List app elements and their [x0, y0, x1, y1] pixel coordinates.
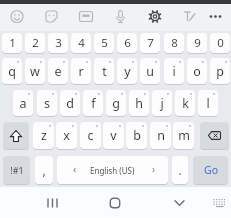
- staticText: h: [135, 95, 143, 112]
- button[interactable]: n: [150, 122, 171, 149]
- button[interactable]: [73, 4, 99, 31]
- button[interactable]: u: [140, 58, 160, 84]
- staticText: z: [41, 127, 47, 144]
- staticText: j: [160, 95, 164, 112]
- button[interactable]: 4: [71, 33, 91, 53]
- button[interactable]: [39, 4, 65, 31]
- staticText: u: [146, 63, 154, 80]
- staticText: !#1: [10, 164, 24, 176]
- staticText: v: [110, 127, 117, 144]
- button[interactable]: c: [80, 122, 101, 149]
- button[interactable]: t: [94, 58, 114, 84]
- button[interactable]: [108, 4, 134, 31]
- button[interactable]: 8: [164, 33, 184, 53]
- staticText: 1: [9, 35, 16, 51]
- staticText: ,: [42, 162, 46, 178]
- staticText: i: [172, 63, 176, 80]
- staticText: e: [54, 63, 62, 80]
- button[interactable]: m: [173, 122, 194, 149]
- staticText: q: [8, 63, 16, 80]
- staticText: x: [63, 127, 70, 144]
- button[interactable]: i: [164, 58, 184, 84]
- button[interactable]: [3, 122, 29, 149]
- staticText: 0: [217, 35, 224, 51]
- button[interactable]: k: [175, 90, 195, 116]
- staticText: r: [78, 63, 84, 80]
- button[interactable]: b: [126, 122, 147, 149]
- button[interactable]: g: [106, 90, 126, 116]
- button[interactable]: p: [210, 58, 230, 84]
- staticText: 3: [55, 35, 62, 51]
- button[interactable]: w: [25, 58, 45, 84]
- staticText: .: [178, 162, 182, 178]
- staticText: l: [206, 95, 210, 112]
- button[interactable]: z: [33, 122, 54, 149]
- staticText: t: [102, 63, 107, 80]
- staticText: d: [66, 95, 74, 112]
- staticText: 6: [124, 35, 131, 51]
- button[interactable]: [101, 187, 129, 218]
- staticText: 2: [32, 35, 39, 51]
- button[interactable]: 3: [48, 33, 68, 53]
- button[interactable]: r: [71, 58, 91, 84]
- button[interactable]: ,: [35, 156, 53, 184]
- button[interactable]: [39, 187, 67, 218]
- staticText: Go: [204, 163, 218, 177]
- button[interactable]: [4, 4, 30, 31]
- staticText: 7: [147, 35, 154, 51]
- staticText: n: [157, 127, 165, 144]
- staticText: 5: [101, 35, 108, 51]
- button[interactable]: !#1: [3, 156, 30, 184]
- staticText: ‹: [73, 162, 77, 176]
- staticText: English (US): [90, 165, 135, 176]
- button[interactable]: o: [187, 58, 207, 84]
- button[interactable]: Go: [193, 156, 228, 184]
- staticText: o: [193, 63, 201, 80]
- staticText: 4: [78, 35, 85, 51]
- staticText: b: [133, 127, 141, 144]
- button[interactable]: [166, 187, 194, 218]
- button[interactable]: 1: [2, 33, 22, 53]
- button[interactable]: x: [56, 122, 77, 149]
- button[interactable]: h: [129, 90, 149, 116]
- button[interactable]: j: [152, 90, 172, 116]
- staticText: s: [44, 95, 50, 112]
- button[interactable]: .: [172, 156, 188, 184]
- button[interactable]: a: [13, 90, 33, 116]
- staticText: 9: [194, 35, 201, 51]
- button[interactable]: 6: [117, 33, 137, 53]
- button[interactable]: [177, 4, 203, 31]
- staticText: k: [182, 95, 189, 112]
- staticText: a: [19, 95, 27, 112]
- button[interactable]: v: [103, 122, 124, 149]
- button[interactable]: [203, 4, 229, 31]
- staticText: ›: [152, 162, 156, 176]
- button[interactable]: 5: [94, 33, 114, 53]
- staticText: 8: [171, 35, 178, 51]
- button[interactable]: [142, 4, 168, 31]
- staticText: m: [178, 127, 190, 144]
- staticText: w: [30, 63, 40, 80]
- button[interactable]: 9: [187, 33, 207, 53]
- button[interactable]: y: [117, 58, 137, 84]
- staticText: p: [216, 63, 224, 80]
- staticText: c: [87, 127, 94, 144]
- button[interactable]: l: [198, 90, 218, 116]
- staticText: y: [124, 63, 131, 80]
- button[interactable]: 0: [210, 33, 230, 53]
- button[interactable]: 7: [140, 33, 160, 53]
- staticText: g: [112, 95, 120, 112]
- button[interactable]: [206, 187, 231, 218]
- button[interactable]: e: [48, 58, 68, 84]
- button[interactable]: f: [83, 90, 103, 116]
- button[interactable]: q: [2, 58, 22, 84]
- button[interactable]: d: [60, 90, 80, 116]
- button[interactable]: 2: [25, 33, 45, 53]
- staticText: f: [91, 95, 96, 112]
- button[interactable]: [200, 122, 229, 149]
- button[interactable]: English (US): [57, 156, 168, 184]
- button[interactable]: s: [37, 90, 57, 116]
